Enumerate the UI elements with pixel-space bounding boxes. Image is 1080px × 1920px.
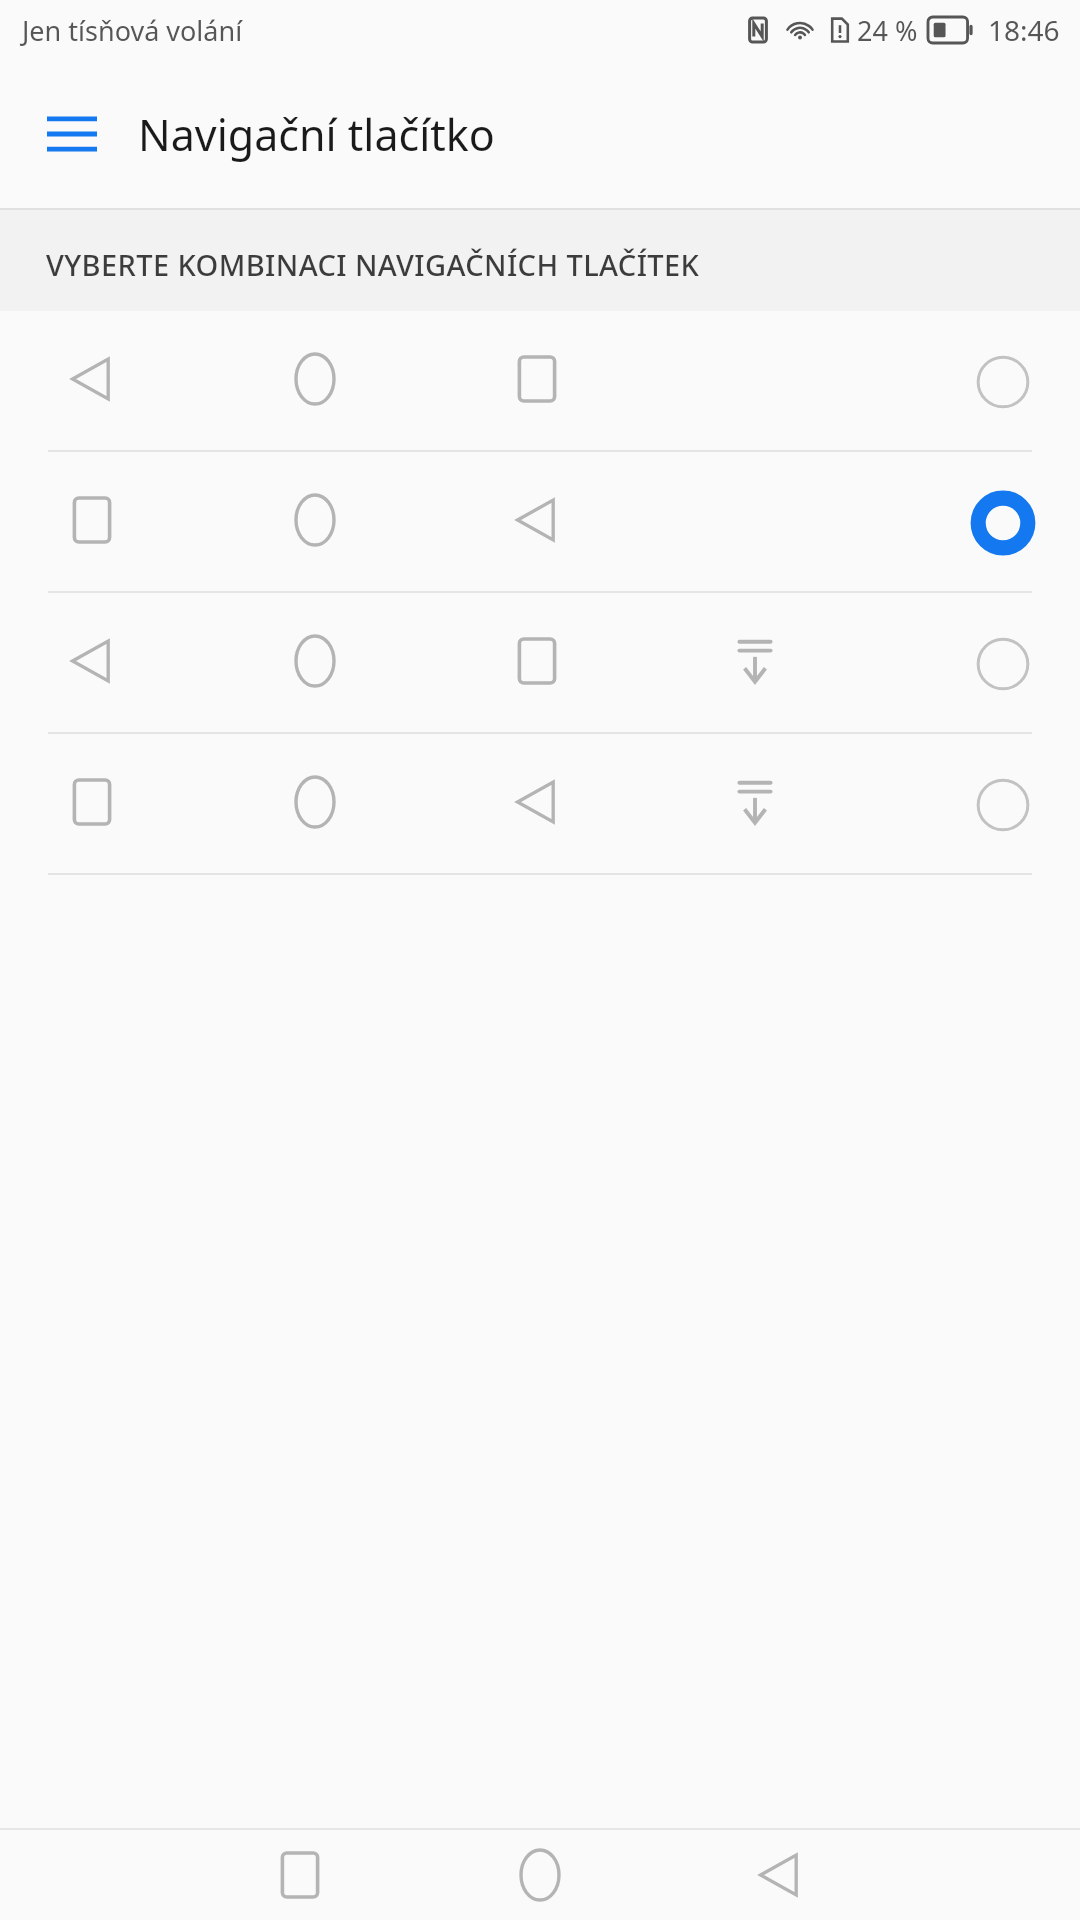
staticText: VYBERTE KOMBINACI NAVIGAČNÍCH TLAČÍTEK [46,245,700,284]
button[interactable]: Select combination [0,452,1080,593]
button[interactable]: Select combination [0,734,1080,875]
button[interactable]: Home [495,1830,585,1920]
button[interactable]: Recents [255,1830,345,1920]
staticText: 24 % [857,12,918,49]
button[interactable]: Select combination [0,311,1080,452]
staticText: Jen tísňová volání [22,12,243,49]
button[interactable]: Menu [34,96,110,172]
button[interactable]: Select combination [960,762,1046,848]
button[interactable]: Select combination [960,480,1046,566]
button[interactable]: Back [735,1830,825,1920]
button[interactable]: Select combination [960,339,1046,425]
staticText: Navigační tlačítko [138,105,495,164]
button[interactable]: Select combination [0,593,1080,734]
staticText: 18:46 [988,11,1060,49]
button[interactable]: Select combination [960,621,1046,707]
